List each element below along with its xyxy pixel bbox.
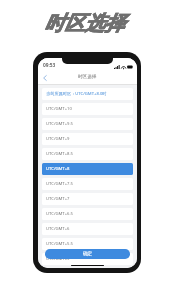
staticText: UTC/GMT+7 (46, 196, 70, 202)
staticText: UTC/GMT+5.5 (46, 241, 73, 247)
staticText: UTC/GMT+5 (46, 256, 70, 262)
staticText: UTC/GMT+7.5 (46, 181, 73, 187)
staticText: 时区选择 (44, 11, 125, 36)
staticText: UTC/GMT+9 (46, 136, 70, 142)
staticText: UTC/GMT+6.5 (46, 211, 73, 217)
button[interactable]: UTC/GMT+9 (42, 133, 133, 145)
button[interactable]: 确定 (45, 249, 130, 259)
button[interactable]: UTC/GMT+8 (42, 163, 133, 175)
button[interactable]: 当前所属时区：UTC/GMT+8.0时 (42, 88, 133, 100)
staticText: 时区选择 (44, 11, 125, 36)
staticText: UTC/GMT+8 (46, 166, 70, 172)
staticText: UTC/GMT+10 (46, 106, 72, 112)
staticText: 当前所属时区：UTC/GMT+8.0时 (46, 91, 107, 97)
button[interactable]: UTC/GMT+8.5 (42, 148, 133, 160)
button[interactable]: 返回 (38, 71, 51, 84)
button[interactable]: UTC/GMT+7 (42, 193, 133, 205)
staticText: 时区选择 (78, 74, 97, 80)
button[interactable]: UTC/GMT+5 (42, 253, 133, 265)
button[interactable]: UTC/GMT+5.5 (42, 238, 133, 250)
staticText: UTC/GMT+6 (46, 226, 70, 232)
staticText: UTC/GMT+9.5 (46, 121, 73, 127)
button[interactable]: UTC/GMT+9.5 (42, 118, 133, 130)
button[interactable]: UTC/GMT+7.5 (42, 178, 133, 190)
button[interactable]: UTC/GMT+10 (42, 103, 133, 115)
button[interactable]: UTC/GMT+6.5 (42, 208, 133, 220)
staticText: 09:53 (43, 62, 56, 69)
staticText: UTC/GMT+8.5 (46, 151, 73, 157)
staticText: 确定 (83, 251, 93, 257)
button[interactable]: UTC/GMT+6 (42, 223, 133, 235)
